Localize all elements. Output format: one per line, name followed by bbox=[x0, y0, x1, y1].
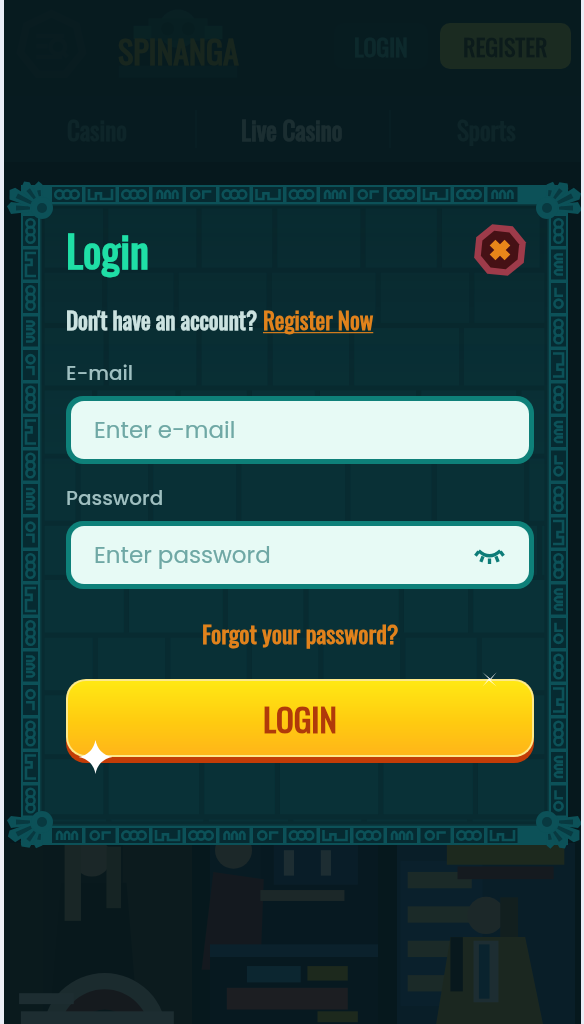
staticText: Enter e-mail bbox=[94, 414, 236, 446]
button[interactable] bbox=[10, 843, 192, 1024]
button[interactable] bbox=[210, 843, 378, 1024]
staticText: Don't have an account? bbox=[66, 303, 263, 337]
button[interactable]: LOGIN bbox=[334, 23, 428, 69]
staticText: Casino bbox=[67, 111, 127, 148]
staticText: E-mail bbox=[66, 359, 134, 387]
button[interactable]: Live Casino bbox=[194, 96, 389, 162]
staticText: Login bbox=[66, 218, 149, 282]
button[interactable]: Enter e-mail bbox=[71, 401, 529, 459]
button[interactable]: Sports bbox=[389, 96, 584, 162]
button[interactable]: Show password bbox=[475, 542, 503, 568]
button[interactable]: SPINANGA bbox=[104, 8, 252, 82]
button[interactable]: REGISTER bbox=[440, 23, 571, 69]
button[interactable]: Forgot your password? bbox=[202, 615, 399, 651]
staticText: LOGIN bbox=[263, 694, 337, 743]
staticText: REGISTER bbox=[463, 28, 548, 64]
staticText: Live Casino bbox=[241, 111, 343, 148]
button[interactable] bbox=[397, 843, 575, 1024]
staticText: SPINANGA bbox=[118, 27, 239, 74]
staticText: Password bbox=[66, 484, 164, 512]
button[interactable]: Enter password bbox=[71, 526, 529, 584]
staticText: Sports bbox=[457, 111, 516, 148]
staticText: Enter password bbox=[94, 539, 271, 571]
button[interactable]: Register Now bbox=[263, 303, 374, 337]
staticText: LOGIN bbox=[354, 28, 408, 64]
button[interactable]: LOGIN bbox=[68, 681, 532, 755]
button[interactable]: Close bbox=[473, 223, 527, 277]
button[interactable]: Casino bbox=[0, 96, 194, 162]
